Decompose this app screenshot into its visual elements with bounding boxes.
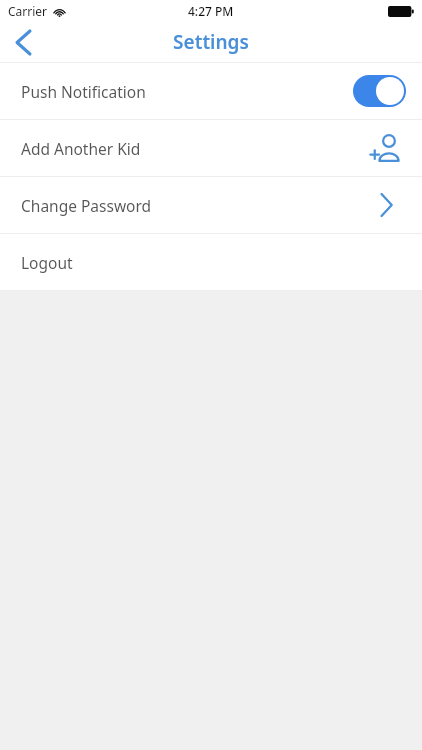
button[interactable]: Change Password — [0, 177, 422, 233]
button[interactable]: Logout — [0, 234, 422, 290]
staticText: Change Password — [21, 195, 152, 216]
button[interactable]: Change Password — [366, 185, 406, 225]
staticText: Settings — [173, 29, 249, 55]
staticText: Logout — [21, 252, 73, 273]
staticText: Push Notification — [21, 81, 146, 102]
button[interactable]: Push Notification toggle, on — [353, 75, 406, 107]
staticText: Add Another Kid — [21, 138, 141, 159]
button[interactable]: Push Notification — [0, 63, 422, 119]
button[interactable]: Add another kid — [366, 128, 406, 168]
button[interactable]: Add Another Kid — [0, 120, 422, 176]
button[interactable]: Back — [0, 22, 44, 62]
staticText: Carrier — [8, 3, 48, 19]
staticText: 4:27 PM — [188, 3, 234, 19]
